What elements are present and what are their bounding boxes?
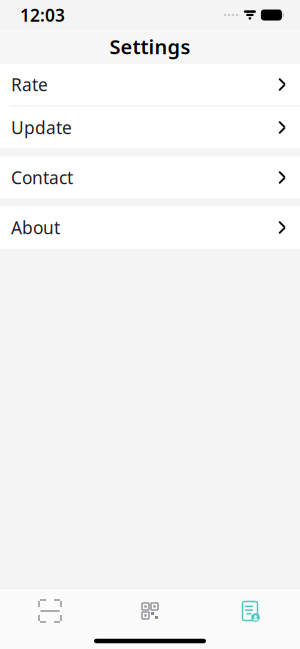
button[interactable]: About [0, 206, 300, 248]
button[interactable]: Documents [200, 589, 300, 633]
button[interactable]: QR Code [100, 589, 200, 633]
button[interactable]: Rate [0, 63, 300, 105]
button[interactable]: Contact [0, 156, 300, 198]
staticText: Rate [11, 73, 48, 96]
button[interactable]: Scan [0, 589, 100, 633]
staticText: 12:03 [20, 3, 65, 26]
staticText: Contact [11, 166, 73, 189]
staticText: Update [11, 116, 72, 139]
staticText: About [11, 216, 60, 239]
staticText: Settings [109, 33, 190, 60]
button[interactable]: Update [0, 106, 300, 148]
